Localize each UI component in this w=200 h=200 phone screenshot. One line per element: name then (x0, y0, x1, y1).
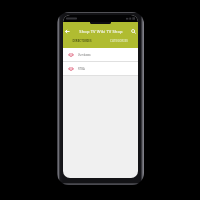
button[interactable]: RTBA (63, 62, 138, 75)
staticText: DIRECTORIES (72, 39, 92, 43)
button[interactable]: Vumbawa (63, 48, 138, 61)
button[interactable]: DIRECTORIES (63, 39, 100, 43)
button[interactable]: Back (63, 27, 72, 36)
staticText: RTBA (78, 67, 85, 71)
button[interactable]: CATEGORIES (100, 39, 138, 43)
button[interactable]: Search (129, 27, 138, 36)
staticText: Vumbawa (78, 53, 91, 57)
staticText: Shop TV Wiki TV Shop (79, 29, 123, 35)
staticText: CATEGORIES (110, 39, 128, 43)
